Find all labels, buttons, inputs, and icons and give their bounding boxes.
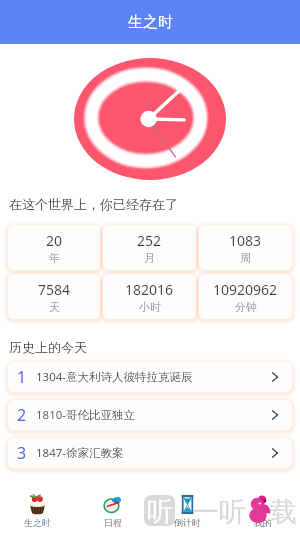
staticText: 听 (147, 495, 173, 526)
staticText: 在这个世界上，你已经存在了 (9, 196, 178, 212)
staticText: 1 (17, 366, 27, 388)
staticText: 小时 (139, 300, 161, 314)
staticText: 倒计时 (174, 517, 201, 528)
button[interactable]: 252 (103, 225, 196, 270)
button[interactable]: 日程 (75, 494, 150, 528)
staticText: 1810-哥伦比亚独立 (36, 407, 136, 423)
button[interactable]: 我的 (225, 494, 300, 528)
staticText: 载 (270, 495, 297, 529)
staticText: 天 (49, 300, 60, 314)
staticText: 分钟 (235, 300, 257, 314)
staticText: 年 (49, 251, 60, 265)
button[interactable]: 20 (8, 225, 100, 270)
staticText: 182016 (125, 280, 174, 299)
staticText: 月 (144, 251, 155, 265)
staticText: 一听 (192, 495, 246, 529)
staticText: 日程 (104, 517, 122, 528)
staticText: 252 (137, 231, 162, 250)
staticText: 生之时 (24, 517, 51, 528)
staticText: 1847-徐家汇教案 (36, 445, 124, 461)
staticText: 1304-意大利诗人彼特拉克诞辰 (36, 369, 193, 385)
button[interactable]: 1 (8, 362, 292, 392)
button[interactable]: 生之时 (0, 494, 75, 528)
button[interactable]: 182016 (103, 274, 196, 319)
staticText: 历史上的今天 (9, 339, 87, 355)
staticText: 3 (17, 442, 27, 464)
staticText: 2 (17, 404, 27, 426)
staticText: 7584 (38, 280, 71, 299)
staticText: 20 (46, 231, 63, 250)
staticText: 我的 (254, 517, 272, 528)
staticText: 生之时 (128, 13, 173, 32)
staticText: 周 (240, 251, 251, 265)
button[interactable]: 倒计时 (150, 494, 225, 528)
button[interactable]: 7584 (8, 274, 100, 319)
staticText: 10920962 (213, 280, 278, 299)
button[interactable]: 1083 (199, 225, 292, 270)
button[interactable]: 10920962 (199, 274, 292, 319)
button[interactable]: 3 (8, 438, 292, 468)
button[interactable]: 2 (8, 400, 292, 430)
staticText: 1083 (229, 231, 262, 250)
